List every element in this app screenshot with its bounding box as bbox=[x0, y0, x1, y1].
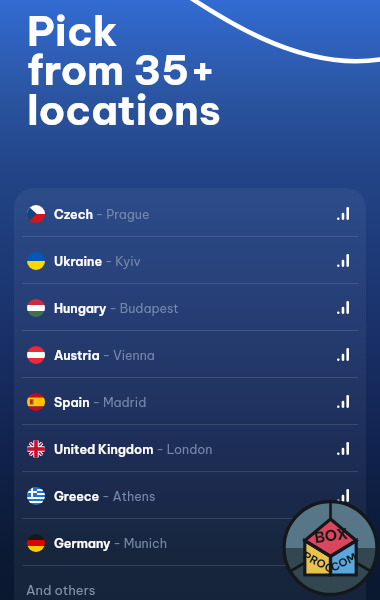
button[interactable]: Austria - Vienna bbox=[14, 331, 366, 378]
button[interactable]: Spain - Madrid bbox=[14, 378, 366, 425]
button[interactable]: Ukraine - Kyiv bbox=[14, 237, 366, 284]
staticText: Austria - Vienna bbox=[54, 347, 155, 363]
button[interactable]: Hungary - Budapest bbox=[14, 284, 366, 331]
staticText: Greece - Athens bbox=[54, 488, 156, 504]
staticText: COM bbox=[314, 542, 373, 582]
staticText: Spain - Madrid bbox=[54, 394, 147, 410]
button[interactable]: United Kingdom - London bbox=[14, 425, 366, 472]
staticText: PROG bbox=[288, 542, 348, 582]
button[interactable]: Czech - Prague bbox=[14, 190, 366, 237]
staticText: Ukraine - Kyiv bbox=[54, 253, 141, 269]
staticText: Czech - Prague bbox=[54, 206, 150, 222]
staticText: And others bbox=[26, 582, 96, 598]
staticText: Pick from 35+ locations bbox=[27, 5, 221, 136]
staticText: BOX bbox=[300, 522, 362, 549]
staticText: Hungary - Budapest bbox=[54, 300, 179, 316]
staticText: United Kingdom - London bbox=[54, 441, 213, 457]
button[interactable]: Germany - Munich bbox=[14, 519, 366, 566]
button[interactable]: Greece - Athens bbox=[14, 472, 366, 519]
staticText: Germany - Munich bbox=[54, 535, 167, 551]
